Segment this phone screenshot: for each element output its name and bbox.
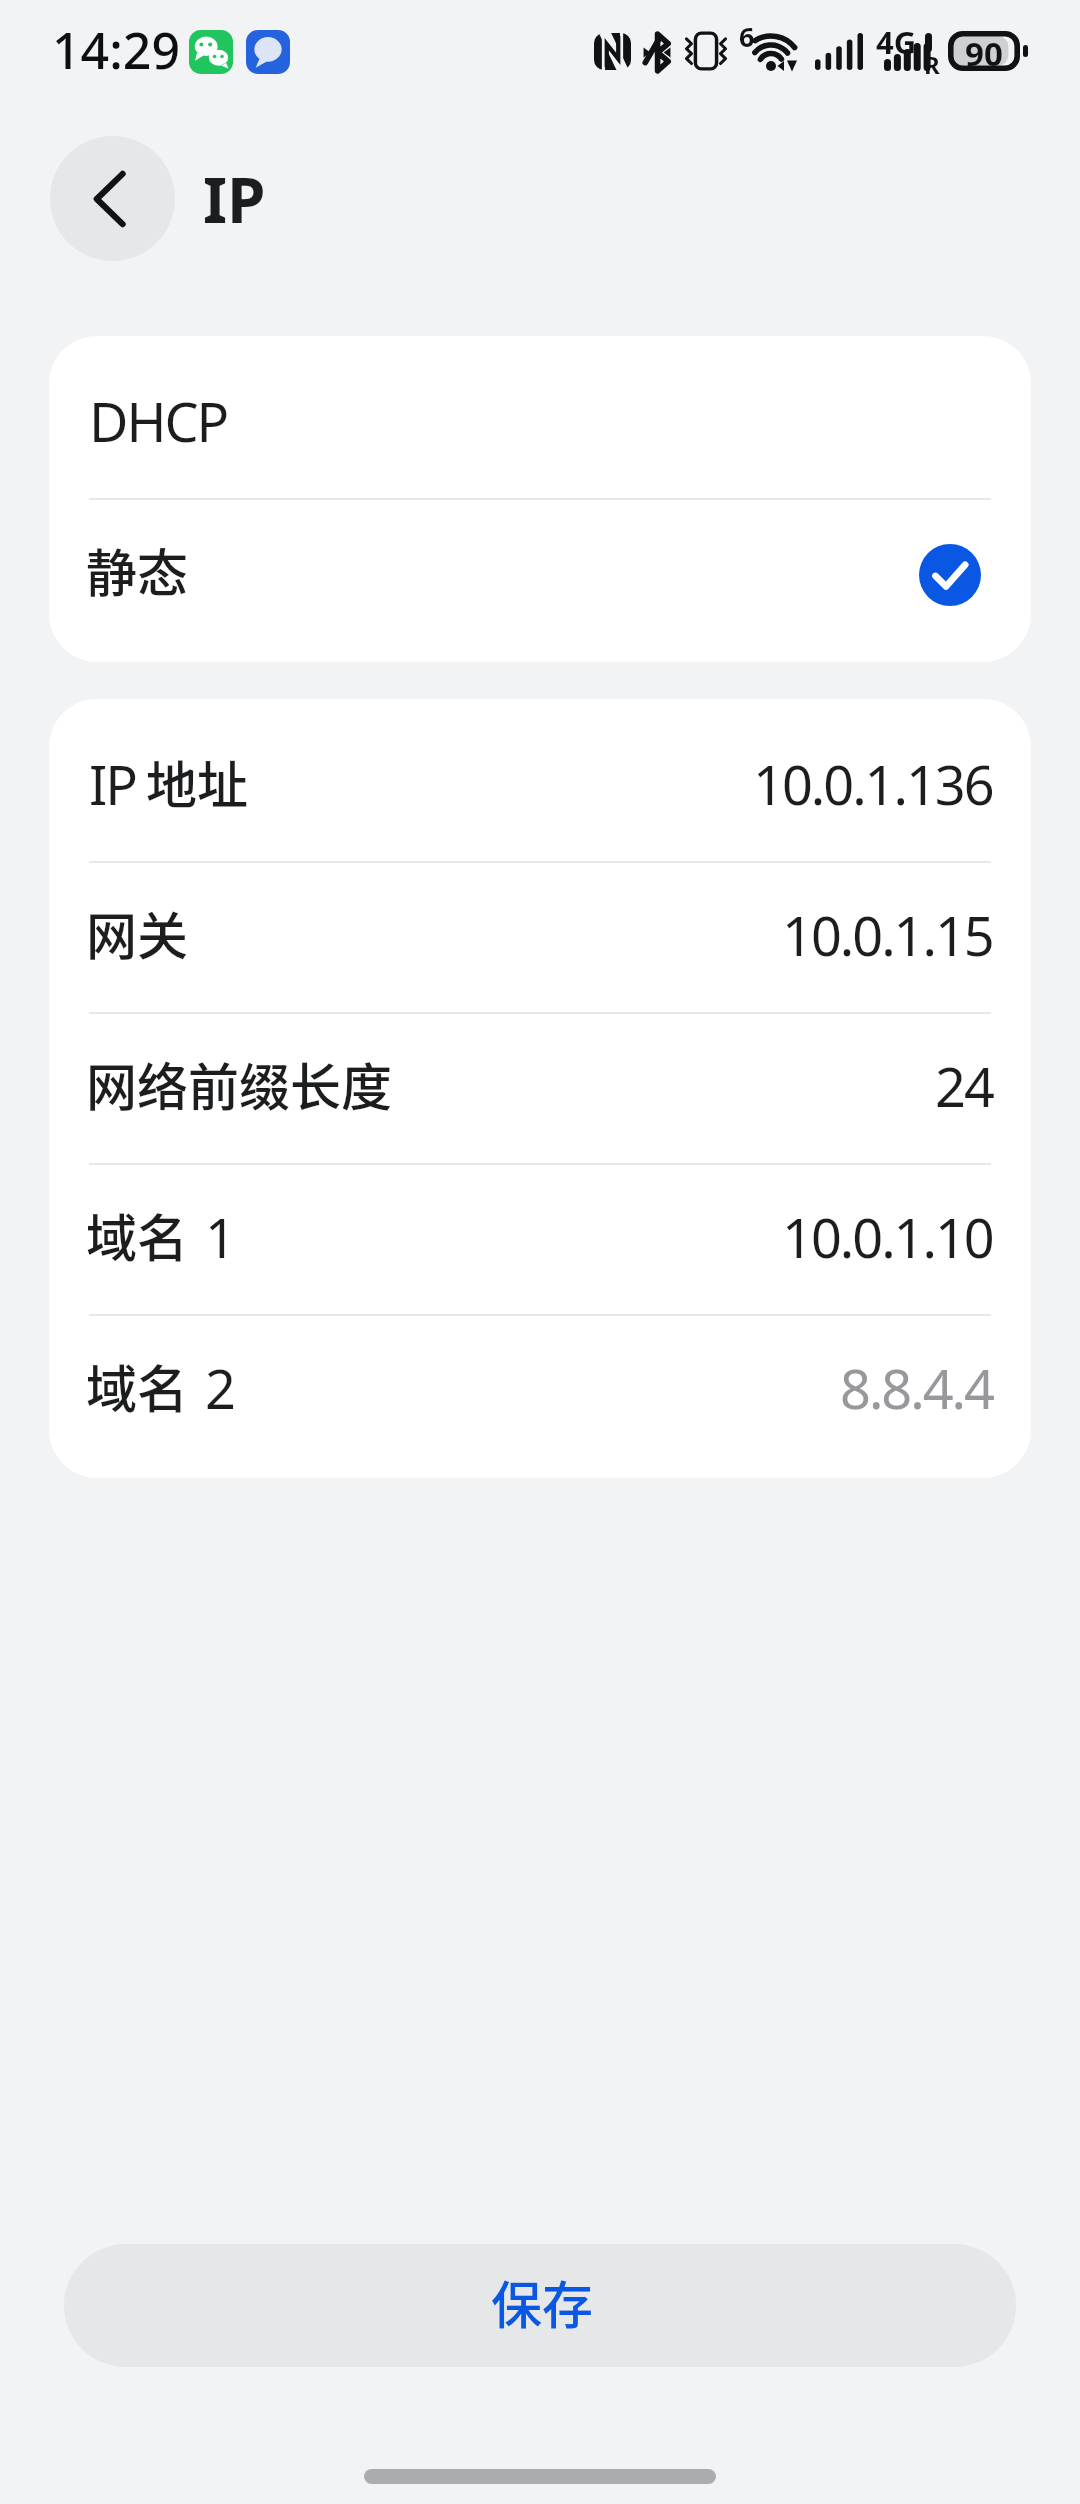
staticText: 1: [205, 1200, 234, 1274]
button[interactable]: Back: [50, 136, 175, 261]
button[interactable]: DHCP: [49, 349, 1031, 498]
staticText: 静态: [86, 533, 189, 607]
staticText: 8.8.4.4: [840, 1351, 993, 1425]
staticText: R: [924, 48, 940, 81]
staticText: 14:29: [52, 16, 180, 72]
button[interactable]: 网络前缀长度: [49, 1014, 1031, 1163]
button[interactable]: 静态: [49, 500, 1031, 649]
staticText: DHCP: [89, 384, 228, 458]
staticText: 域名: [86, 1198, 189, 1272]
button[interactable]: 网关: [49, 863, 1031, 1012]
staticText: 90: [965, 31, 1003, 71]
button[interactable]: 域名: [49, 1165, 1031, 1314]
staticText: 6: [739, 18, 755, 55]
staticText: 域名: [86, 1349, 189, 1423]
staticText: 2: [205, 1351, 234, 1425]
staticText: 10.0.1.136: [753, 747, 993, 821]
staticText: 网络前缀长度: [86, 1047, 393, 1121]
staticText: IP: [89, 747, 136, 821]
staticText: IP: [203, 157, 266, 241]
staticText: 10.0.1.10: [782, 1200, 993, 1274]
staticText: 24: [935, 1049, 993, 1123]
staticText: 4G: [876, 21, 917, 63]
staticText: 网关: [86, 896, 189, 970]
button[interactable]: IP: [49, 712, 1031, 861]
staticText: 地址: [146, 745, 249, 819]
button[interactable]: 域名: [49, 1316, 1031, 1465]
button[interactable]: 保存: [64, 2244, 1016, 2367]
staticText: 10.0.1.15: [782, 898, 993, 972]
staticText: 保存: [491, 2265, 594, 2339]
